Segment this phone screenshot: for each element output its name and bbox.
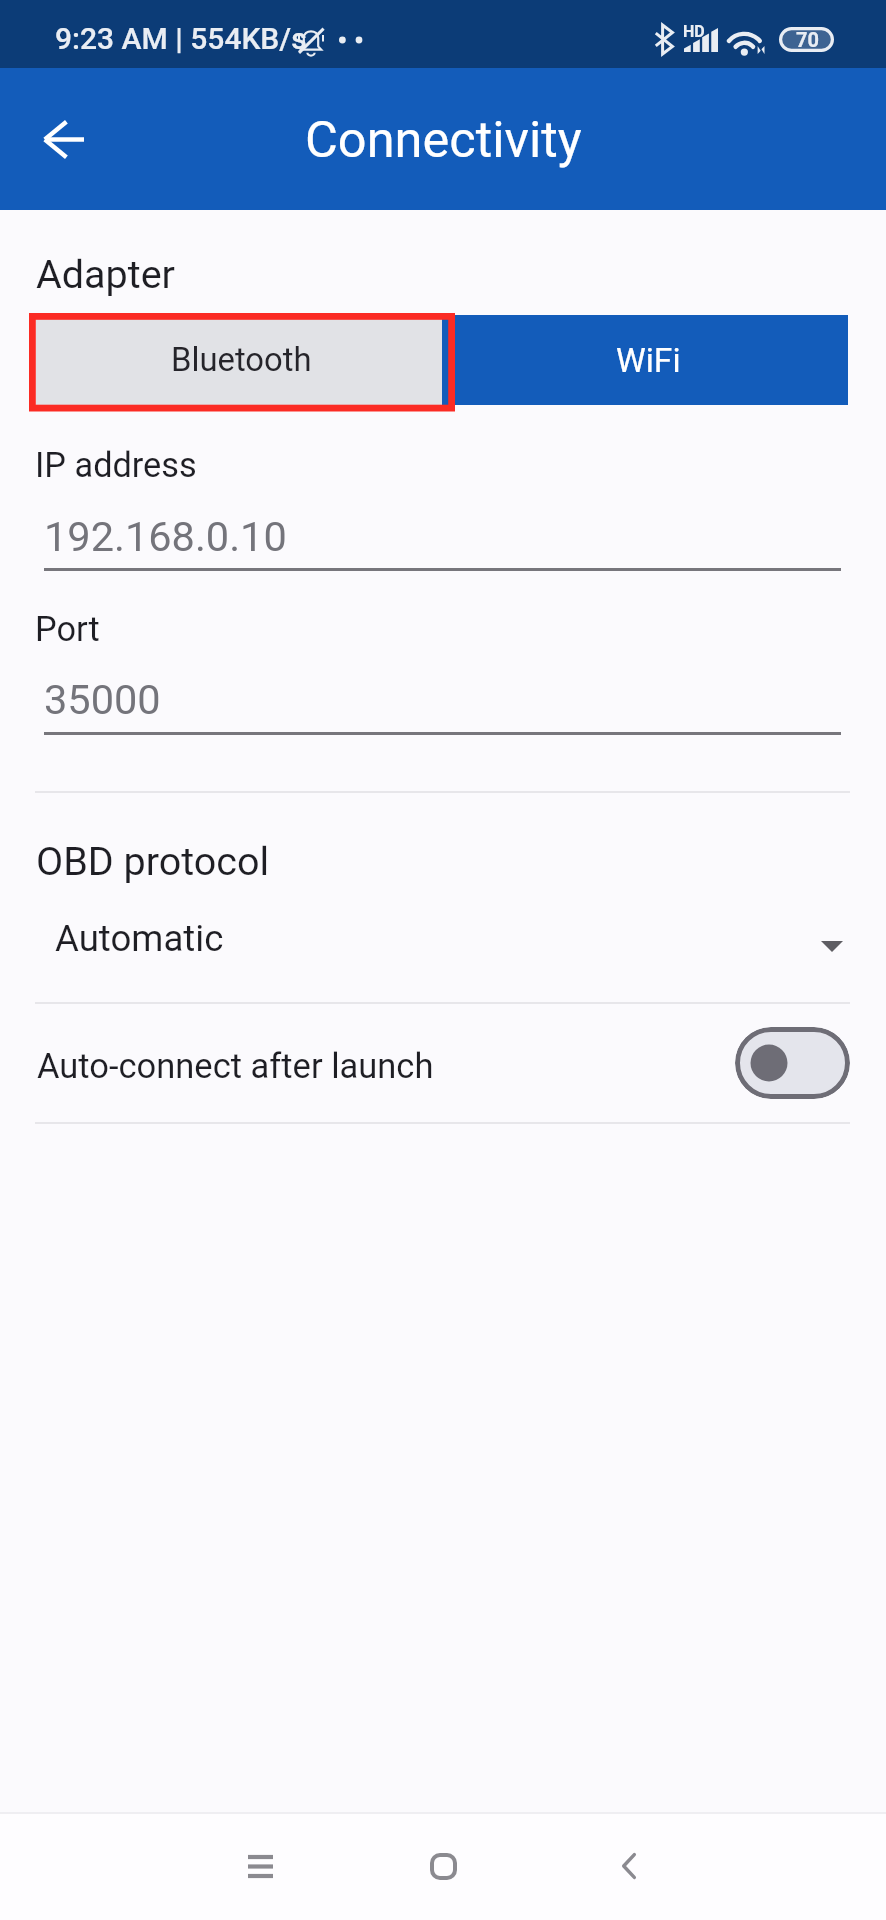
staticText: Auto-connect after launch bbox=[37, 1046, 434, 1086]
staticText: 9:23 AM | 554KB/s bbox=[55, 21, 307, 56]
button[interactable]: Bluetooth bbox=[36, 315, 442, 405]
staticText: Connectivity bbox=[305, 110, 582, 169]
staticText: 35000 bbox=[44, 675, 161, 724]
button[interactable]: Automatic bbox=[0, 903, 886, 975]
staticText: 192.168.0.10 bbox=[44, 512, 287, 561]
button[interactable]: 35000 bbox=[44, 662, 841, 735]
staticText: Bluetooth bbox=[171, 341, 312, 379]
staticText: Adapter bbox=[36, 251, 175, 297]
staticText: 70 bbox=[796, 28, 819, 51]
staticText: OBD protocol bbox=[36, 838, 270, 884]
button[interactable]: Back bbox=[18, 93, 110, 185]
staticText: Port bbox=[35, 609, 100, 649]
button[interactable]: Back bbox=[579, 1816, 679, 1916]
staticText: Automatic bbox=[55, 917, 224, 960]
button[interactable]: WiFi bbox=[442, 315, 848, 405]
button[interactable]: 192.168.0.10 bbox=[44, 498, 841, 571]
button[interactable]: Auto-connect after launch bbox=[0, 1004, 886, 1122]
button[interactable]: Home bbox=[393, 1816, 493, 1916]
button[interactable]: Toggle auto-connect after launch bbox=[735, 1027, 850, 1099]
staticText: IP address bbox=[35, 445, 197, 485]
staticText: HD bbox=[683, 22, 705, 41]
staticText: WiFi bbox=[616, 341, 681, 380]
button[interactable]: Menu bbox=[210, 1816, 310, 1916]
